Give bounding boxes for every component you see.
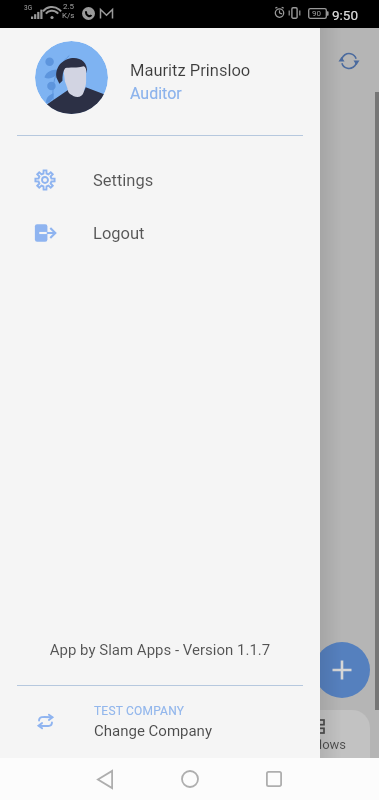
staticText: 3G [24,4,33,12]
staticText: 2.5 [63,2,75,11]
staticText: Settings [93,171,154,190]
staticText: TEST COMPANY [94,704,185,718]
staticText: Mauritz Prinsloo [130,61,251,80]
staticText: Workflows [285,737,347,752]
button[interactable]: Recent apps [252,758,296,800]
button[interactable]: Settings [0,155,320,205]
button[interactable]: Back [83,758,127,800]
button[interactable]: Refresh [338,50,360,72]
staticText: Logout [93,224,145,243]
staticText: 90 [312,9,321,18]
button[interactable]: Add [314,642,370,698]
button[interactable]: Logout [0,208,320,258]
button[interactable]: TEST COMPANY [0,689,320,751]
button[interactable]: Home [168,758,212,800]
button[interactable]: Workflows [280,712,370,758]
staticText: Auditor [130,84,182,103]
staticText: Change Company [94,722,213,740]
staticText: 9:50 [332,7,359,23]
staticText: App by Slam Apps - Version 1.1.7 [0,641,320,659]
staticText: K/s [62,11,75,20]
